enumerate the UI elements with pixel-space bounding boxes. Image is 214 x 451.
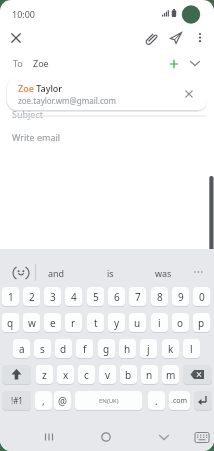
button[interactable]: h	[119, 339, 136, 358]
button[interactable]: v	[99, 365, 116, 384]
button[interactable]: r	[65, 313, 82, 332]
staticText: r	[71, 316, 76, 330]
staticText: s	[40, 342, 45, 356]
button[interactable]: 2	[23, 287, 40, 306]
button[interactable]: @	[54, 391, 71, 410]
button[interactable]	[187, 55, 203, 71]
button[interactable]: and	[38, 262, 74, 284]
button[interactable]: a	[13, 339, 30, 358]
button[interactable]: b	[120, 365, 137, 384]
button[interactable]: l	[183, 339, 200, 358]
staticText: i	[158, 316, 161, 330]
staticText: h	[124, 342, 131, 356]
staticText: q	[7, 316, 14, 330]
staticText: e	[50, 316, 56, 330]
button[interactable]: 6	[108, 287, 125, 306]
button[interactable]: was	[145, 262, 181, 284]
button[interactable]: n	[141, 365, 158, 384]
staticText: o	[177, 316, 184, 330]
staticText: 10:00	[12, 8, 36, 20]
staticText: u	[134, 316, 141, 330]
button[interactable]: d	[55, 339, 72, 358]
button[interactable]	[95, 428, 117, 446]
staticText: 3	[50, 290, 56, 304]
button[interactable]: .	[148, 391, 165, 410]
button[interactable]	[192, 30, 208, 46]
button[interactable]: t	[87, 313, 104, 332]
button[interactable]	[8, 30, 24, 46]
button[interactable]: is	[92, 262, 128, 284]
button[interactable]: 0	[193, 287, 210, 306]
button[interactable]: 4	[65, 287, 82, 306]
staticText: a	[19, 342, 25, 356]
button[interactable]	[191, 428, 213, 446]
button[interactable]	[166, 56, 182, 72]
button[interactable]: j	[140, 339, 157, 358]
staticText: and	[48, 267, 65, 279]
button[interactable]: 8	[151, 287, 168, 306]
staticText: .com	[171, 396, 188, 406]
staticText: 6	[114, 290, 120, 304]
button[interactable]	[8, 262, 34, 284]
staticText: 1	[8, 290, 14, 304]
button[interactable]: m	[162, 365, 179, 384]
staticText: Write email	[12, 131, 61, 143]
button[interactable]: ,	[35, 391, 52, 410]
button[interactable]: z	[36, 365, 53, 384]
button[interactable]: c	[78, 365, 95, 384]
staticText: c	[84, 368, 89, 382]
staticText: w	[28, 316, 36, 330]
button[interactable]: w	[23, 313, 40, 332]
staticText: p	[198, 316, 205, 330]
staticText: !#1	[11, 395, 23, 406]
staticText: @	[58, 394, 67, 408]
button[interactable]: 3	[44, 287, 61, 306]
staticText: y	[114, 316, 120, 330]
staticText: To	[13, 57, 23, 69]
staticText: 5	[93, 290, 99, 304]
button[interactable]: k	[162, 339, 179, 358]
button[interactable]: 9	[172, 287, 189, 306]
button[interactable]: x	[57, 365, 74, 384]
staticText: ,	[42, 394, 45, 408]
button[interactable]	[168, 30, 184, 46]
button[interactable]: u	[129, 313, 146, 332]
button[interactable]: s	[34, 339, 51, 358]
button[interactable]	[144, 30, 160, 46]
button[interactable]: !#1	[2, 391, 31, 410]
button[interactable]	[183, 365, 212, 384]
staticText: Subject	[12, 108, 44, 120]
staticText: is	[107, 267, 114, 279]
button[interactable]: 1	[2, 287, 19, 306]
staticText: d	[60, 342, 67, 356]
button[interactable]	[153, 428, 175, 446]
staticText: v	[105, 368, 111, 382]
staticText: was	[155, 267, 172, 279]
button[interactable]: 5	[87, 287, 104, 306]
staticText: 7	[135, 290, 141, 304]
button[interactable]	[194, 391, 212, 410]
staticText: g	[103, 342, 110, 356]
button[interactable]: Zoe Taylor	[7, 78, 207, 110]
staticText: f	[83, 342, 87, 356]
button[interactable]: e	[44, 313, 61, 332]
button[interactable]: 7	[129, 287, 146, 306]
button[interactable]: y	[108, 313, 125, 332]
button[interactable]: i	[151, 313, 168, 332]
staticText: zoe.taylor.wm@gmail.com	[18, 95, 117, 106]
button[interactable]	[38, 428, 60, 446]
staticText: k	[168, 342, 174, 356]
button[interactable]	[2, 365, 31, 384]
staticText: t	[94, 316, 98, 330]
button[interactable]: EN(UK)	[75, 391, 142, 410]
button[interactable]: q	[2, 313, 19, 332]
staticText: z	[42, 368, 47, 382]
staticText: 0	[199, 290, 205, 304]
button[interactable]: f	[76, 339, 93, 358]
staticText: 9	[178, 290, 184, 304]
button[interactable]: p	[193, 313, 210, 332]
staticText: 2	[29, 290, 35, 304]
button[interactable]: o	[172, 313, 189, 332]
button[interactable]: g	[98, 339, 115, 358]
button[interactable]: .com	[169, 391, 190, 410]
